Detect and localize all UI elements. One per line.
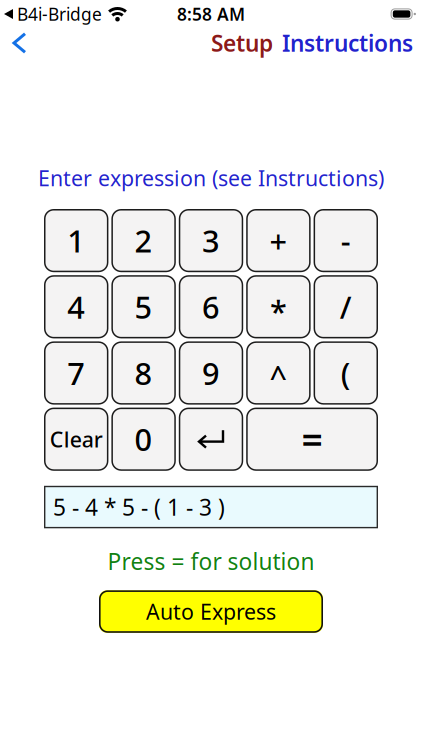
staticText: 5 - 4 * 5 - ( 1 - 3 ) [53, 492, 225, 522]
button[interactable]: 6 [179, 275, 243, 338]
button[interactable]: ^ [246, 341, 311, 405]
button[interactable]: - [314, 209, 378, 272]
button[interactable]: 3 [179, 209, 243, 272]
button[interactable]: + [246, 209, 311, 272]
button[interactable]: 5 - 4 * 5 - ( 1 - 3 ) [44, 486, 378, 528]
staticText: 2 [135, 220, 153, 261]
button[interactable]: Back [0, 34, 33, 52]
staticText: Setup [211, 28, 273, 58]
button[interactable]: Instructions [282, 28, 413, 58]
button[interactable]: * [246, 275, 311, 338]
button[interactable]: 0 [111, 408, 176, 471]
button[interactable]: 7 [44, 341, 108, 405]
staticText: B4i-Bridge [17, 2, 102, 25]
staticText: Auto Express [146, 597, 276, 626]
staticText: 8:58 AM [177, 2, 245, 25]
button[interactable]: 8 [111, 341, 176, 405]
button[interactable]: 9 [179, 341, 243, 405]
staticText: 7 [67, 353, 85, 393]
staticText: 6 [202, 286, 220, 327]
staticText: ( [341, 353, 351, 393]
staticText: 3 [202, 220, 220, 261]
staticText: Enter expression (see Instructions) [38, 164, 384, 192]
staticText: + [269, 220, 287, 261]
staticText: ^ [269, 356, 287, 396]
button[interactable]: 2 [111, 209, 176, 272]
staticText: 1 [67, 220, 85, 261]
staticText: 5 [135, 286, 153, 327]
staticText: / [340, 286, 352, 327]
staticText: 8 [135, 353, 153, 393]
staticText: 4 [67, 286, 85, 327]
staticText: - [341, 220, 351, 261]
staticText: * [270, 290, 287, 331]
button[interactable]: 1 [44, 209, 108, 272]
button[interactable]: 4 [44, 275, 108, 338]
staticText: = [302, 414, 323, 464]
button[interactable]: Delete [179, 408, 243, 471]
button[interactable]: = [246, 408, 378, 471]
staticText: Clear [50, 425, 103, 453]
button[interactable]: / [314, 275, 378, 338]
staticText: 9 [202, 353, 220, 393]
staticText: Instructions [282, 28, 413, 58]
staticText: 0 [135, 419, 153, 459]
button[interactable]: Clear [44, 408, 108, 471]
button[interactable]: ( [314, 341, 378, 405]
button[interactable]: Auto Express [99, 590, 323, 633]
staticText: Press = for solution [107, 546, 314, 576]
button[interactable]: 5 [111, 275, 176, 338]
button[interactable]: Setup [211, 28, 273, 58]
